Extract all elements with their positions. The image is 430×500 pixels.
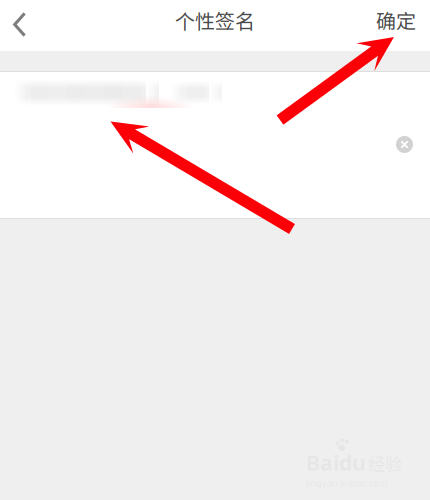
button[interactable]: 清除 xyxy=(387,127,422,162)
staticText: 个性签名 xyxy=(175,5,255,34)
button[interactable]: 确定 xyxy=(360,2,430,48)
staticText: 经验 xyxy=(368,451,402,476)
staticText: 确定 xyxy=(376,5,416,34)
button[interactable]: 返回 xyxy=(0,2,43,48)
staticText: Baidu xyxy=(306,448,366,477)
